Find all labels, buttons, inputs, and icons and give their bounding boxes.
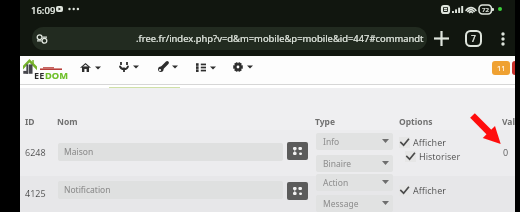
button[interactable]: Page info [32,27,427,50]
staticText: Options [399,116,433,128]
staticText: Maison [64,146,94,158]
staticText: 7 [471,33,476,45]
staticText: Notification [64,184,111,196]
button[interactable]: Info [316,133,393,150]
button[interactable]: Binaire [316,155,393,172]
button[interactable]: Historiser [405,150,461,162]
button[interactable]: Outils [158,62,178,72]
button[interactable]: Reglages [233,62,253,72]
button[interactable]: Plugins [119,62,139,72]
button[interactable]: More options [490,26,515,51]
staticText: Info [323,136,340,148]
button[interactable]: Action [316,174,393,191]
staticText: DOM [45,69,68,82]
staticText: 0 [503,146,509,158]
button[interactable]: Maison [58,143,283,161]
other: Page info [37,34,47,44]
button[interactable]: Notification [58,181,283,199]
button[interactable]: Configure [287,142,308,160]
staticText: .free.fr/index.php?v=d&m=mobile&p=mobile… [136,32,424,45]
staticText: 6248 [25,146,46,158]
button[interactable]: Analyse [196,63,216,72]
staticText: Message [323,198,359,210]
staticText: Vale [502,116,520,128]
button[interactable]: Accueil [80,63,101,72]
staticText: 72 [482,6,489,14]
staticText: 16:09 [31,4,56,17]
staticText: Action [323,177,349,189]
button[interactable]: Jeedom [20,57,70,81]
staticText: EE [34,69,45,82]
staticText: Nom [57,116,78,128]
staticText: ID [25,116,35,128]
staticText: 11 [497,63,506,73]
button[interactable]: Configure [287,182,308,200]
button[interactable]: Switch tabs [461,26,486,51]
staticText: 4125 [25,187,46,199]
staticText: Afficher [413,184,446,196]
staticText: Historiser [419,150,461,162]
button[interactable]: 1 [512,61,520,75]
button[interactable]: New tab [429,26,454,51]
button[interactable]: 11 [492,61,510,75]
button[interactable]: Message [316,195,393,212]
button[interactable]: Afficher [399,184,446,196]
staticText: Type [315,116,336,128]
staticText: Binaire [323,158,352,170]
button[interactable]: Afficher [399,136,446,148]
staticText: Afficher [413,136,446,148]
